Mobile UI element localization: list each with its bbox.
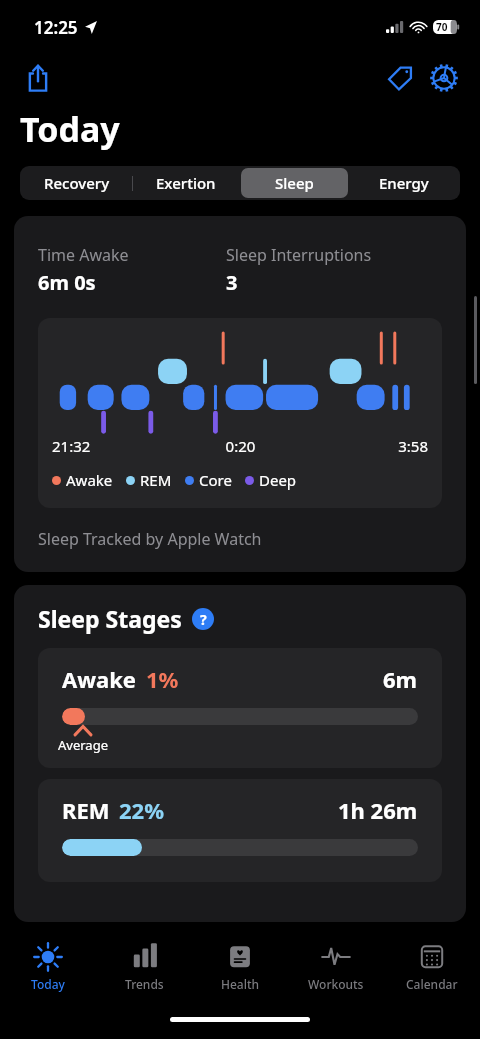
button[interactable]: Health	[192, 933, 288, 1005]
staticText: Awake	[66, 470, 113, 490]
button[interactable]: Share	[18, 58, 58, 98]
staticText: Time Awake	[38, 244, 129, 266]
button[interactable]: Sleep Stages	[38, 603, 214, 634]
staticText: Awake	[62, 664, 137, 694]
staticText: 22%	[119, 795, 165, 825]
button[interactable]: Recovery	[23, 168, 130, 198]
staticText: Today	[20, 106, 120, 152]
staticText: 3:58	[303, 436, 428, 456]
staticText: 1%	[146, 664, 179, 694]
staticText: 1h 26m	[338, 795, 418, 825]
button[interactable]: Workouts	[288, 933, 384, 1005]
staticText: Sleep Stages	[38, 603, 182, 634]
staticText: Deep	[259, 470, 297, 490]
staticText: 6m	[383, 664, 418, 694]
button[interactable]: Sleep	[241, 168, 348, 198]
staticText: Sleep Tracked by Apple Watch	[38, 528, 262, 550]
staticText: Average	[58, 736, 108, 754]
button[interactable]: Energy	[350, 168, 457, 198]
staticText: Sleep	[275, 173, 314, 193]
staticText: Exertion	[156, 173, 216, 193]
staticText: Today	[31, 976, 65, 992]
staticText: Energy	[379, 173, 429, 193]
staticText: 6m 0s	[38, 269, 96, 296]
staticText: Health	[221, 976, 260, 992]
button[interactable]: Trends	[96, 933, 192, 1005]
button[interactable]: Settings	[422, 56, 466, 100]
staticText: 21:32	[52, 436, 178, 456]
staticText: 3	[226, 269, 238, 296]
button[interactable]: Exertion	[132, 168, 239, 198]
staticText: Calendar	[406, 976, 458, 992]
staticText: Core	[199, 470, 232, 490]
staticText: Sleep Interruptions	[226, 244, 372, 266]
staticText: REM	[140, 470, 172, 490]
staticText: 0:20	[178, 436, 303, 456]
button[interactable]: Awake	[38, 648, 442, 768]
button[interactable]: Tags	[378, 56, 422, 100]
staticText: Workouts	[308, 976, 364, 992]
staticText: Trends	[125, 976, 164, 992]
staticText: Recovery	[44, 173, 110, 193]
staticText: 12:25	[34, 16, 78, 39]
button[interactable]: Today	[0, 933, 96, 1005]
staticText: REM	[62, 795, 110, 825]
button[interactable]: Calendar	[384, 933, 480, 1005]
button[interactable]: REM	[38, 779, 442, 882]
staticText: 70	[436, 20, 448, 34]
staticText: ?	[200, 610, 207, 629]
